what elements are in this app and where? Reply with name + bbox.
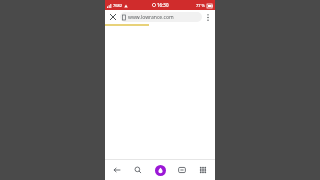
button[interactable]: Home bbox=[150, 160, 170, 180]
button[interactable]: Close bbox=[107, 11, 119, 23]
button[interactable]: Search bbox=[128, 160, 148, 180]
staticText: www.lowrance.com bbox=[128, 14, 174, 21]
button[interactable]: Tabs bbox=[172, 160, 192, 180]
staticText: 7682 bbox=[113, 3, 123, 8]
staticText: 77 % bbox=[196, 3, 206, 8]
button[interactable]: Apps bbox=[193, 160, 213, 180]
staticText: 16:30 bbox=[157, 2, 169, 8]
button[interactable]: www.lowrance.com bbox=[120, 12, 202, 22]
button[interactable]: More options bbox=[203, 12, 213, 22]
button[interactable]: Back bbox=[107, 160, 127, 180]
